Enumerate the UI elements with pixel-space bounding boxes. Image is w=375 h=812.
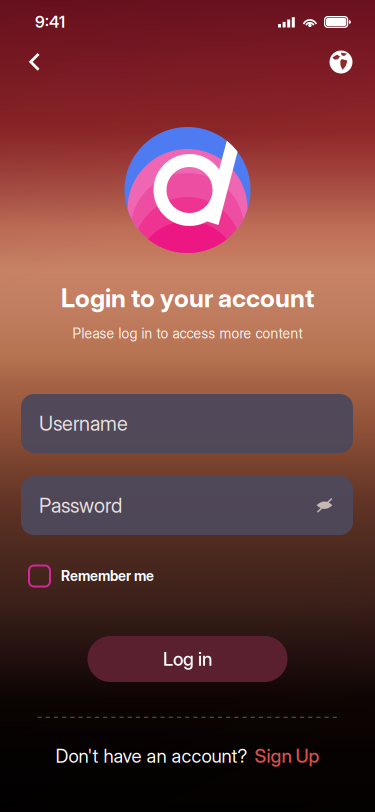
button[interactable]: Change language [319,44,363,80]
staticText: Don't have an account? [55,745,247,767]
staticText: Login to your account [61,283,314,313]
staticText: Please log in to access more content [72,325,302,342]
staticText: Password [39,493,122,518]
staticText: Sign Up [254,745,319,767]
staticText: Log in [163,648,212,670]
button[interactable]: Don't have an account? [55,744,319,768]
button[interactable]: Log in [87,636,287,682]
staticText: 9:41 [35,12,65,32]
button[interactable]: Password [21,476,353,535]
button[interactable]: Username [21,394,353,453]
staticText: Username [39,411,128,436]
staticText: Remember me [61,567,154,584]
button[interactable]: Back [12,44,56,80]
button[interactable]: Remember me [0,557,375,595]
